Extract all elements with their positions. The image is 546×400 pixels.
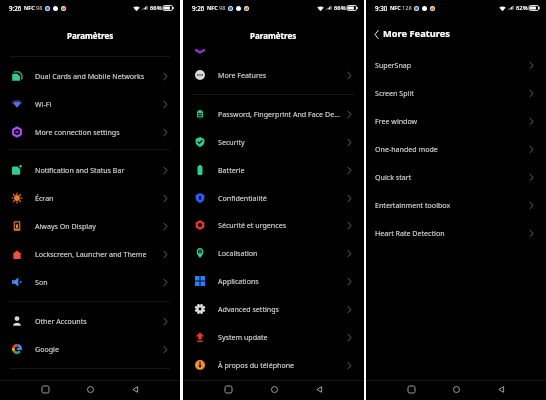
staticText: 98 bbox=[36, 4, 43, 12]
staticText: 98 bbox=[219, 4, 226, 12]
staticText: Free window bbox=[375, 116, 515, 126]
button[interactable]: Localisation bbox=[183, 239, 364, 267]
staticText: Lockscreen, Launcher and Theme bbox=[35, 249, 157, 259]
staticText: Password, Fingerprint And Face De... bbox=[218, 109, 344, 119]
button[interactable]: Sécurité et urgences bbox=[183, 211, 364, 239]
staticText: 9:26 bbox=[9, 4, 22, 12]
button[interactable]: Home bbox=[81, 380, 99, 398]
staticText: System update bbox=[218, 332, 340, 342]
button[interactable]: More connection settings bbox=[0, 118, 180, 146]
staticText: Always On Display bbox=[35, 221, 157, 231]
button[interactable]: SuperSnap bbox=[366, 51, 546, 79]
staticText: Paramètres bbox=[250, 30, 297, 41]
button[interactable]: Home bbox=[447, 380, 465, 398]
staticText: NFC bbox=[24, 4, 35, 12]
staticText: Confidentialité bbox=[218, 193, 340, 203]
staticText: Écran bbox=[35, 193, 157, 203]
button[interactable]: Other Accounts bbox=[0, 307, 180, 335]
button[interactable]: Back bbox=[310, 380, 328, 398]
staticText: 128 bbox=[402, 4, 412, 12]
staticText: Sécurité et urgences bbox=[218, 220, 340, 230]
button[interactable]: Recents bbox=[219, 380, 237, 398]
button[interactable]: Back bbox=[492, 380, 510, 398]
staticText: NFC bbox=[390, 4, 401, 12]
staticText: 66% bbox=[334, 4, 346, 12]
staticText: À propos du téléphone bbox=[218, 360, 340, 370]
staticText: One-handed mode bbox=[375, 144, 515, 154]
staticText: Google bbox=[35, 344, 157, 354]
button[interactable]: Quick start bbox=[366, 163, 546, 191]
staticText: Quick start bbox=[375, 172, 515, 182]
staticText: More Features bbox=[218, 70, 340, 80]
button[interactable]: Advanced settings bbox=[183, 295, 364, 323]
button[interactable]: Security bbox=[183, 128, 364, 156]
staticText: Applications bbox=[218, 276, 340, 286]
staticText: Son bbox=[35, 277, 157, 287]
button[interactable]: Lockscreen, Launcher and Theme bbox=[0, 240, 180, 268]
staticText: SuperSnap bbox=[375, 60, 515, 70]
staticText: Entertainment toolbox bbox=[375, 200, 515, 210]
staticText: Paramètres bbox=[67, 30, 114, 41]
button[interactable]: Google bbox=[0, 335, 180, 363]
staticText: Dual Cards and Mobile Networks bbox=[35, 71, 157, 81]
staticText: Wi-Fi bbox=[35, 99, 157, 109]
button[interactable]: Wi-Fi bbox=[0, 90, 180, 118]
button[interactable]: Dual Cards and Mobile Networks bbox=[0, 62, 180, 90]
button[interactable]: More Features bbox=[183, 61, 364, 89]
staticText: More connection settings bbox=[35, 127, 157, 137]
button[interactable]: Entertainment toolbox bbox=[366, 191, 546, 219]
button[interactable]: Recents bbox=[402, 380, 420, 398]
staticText: NFC bbox=[207, 4, 218, 12]
button[interactable]: Free window bbox=[366, 107, 546, 135]
button[interactable]: Applications bbox=[183, 267, 364, 295]
staticText: More Features bbox=[383, 27, 451, 40]
button[interactable]: Heart Rate Detection bbox=[366, 219, 546, 247]
button[interactable]: System update bbox=[183, 323, 364, 351]
staticText: 62% bbox=[516, 4, 528, 12]
button[interactable]: À propos du téléphone bbox=[183, 351, 364, 379]
button[interactable]: Password, Fingerprint And Face De... bbox=[183, 100, 364, 128]
button[interactable]: Confidentialité bbox=[183, 184, 364, 212]
button[interactable]: Batterie bbox=[183, 156, 364, 184]
button[interactable]: Screen Split bbox=[366, 79, 546, 107]
button[interactable]: Son bbox=[0, 268, 180, 296]
staticText: 66% bbox=[150, 4, 162, 12]
staticText: Security bbox=[218, 137, 340, 147]
button[interactable]: Back bbox=[126, 380, 144, 398]
staticText: Heart Rate Detection bbox=[375, 228, 515, 238]
staticText: Screen Split bbox=[375, 88, 515, 98]
staticText: Advanced settings bbox=[218, 304, 340, 314]
staticText: 9:30 bbox=[375, 4, 388, 12]
staticText: Other Accounts bbox=[35, 316, 157, 326]
staticText: Localisation bbox=[218, 248, 340, 258]
button[interactable]: Home bbox=[265, 380, 283, 398]
button[interactable]: Écran bbox=[0, 184, 180, 212]
staticText: Notification and Status Bar bbox=[35, 165, 157, 175]
button[interactable]: Back bbox=[370, 28, 383, 41]
staticText: 9:26 bbox=[192, 4, 205, 12]
button[interactable]: Notification and Status Bar bbox=[0, 156, 180, 184]
staticText: Batterie bbox=[218, 165, 340, 175]
button[interactable]: One-handed mode bbox=[366, 135, 546, 163]
button[interactable]: Recents bbox=[36, 380, 54, 398]
button[interactable]: Always On Display bbox=[0, 212, 180, 240]
